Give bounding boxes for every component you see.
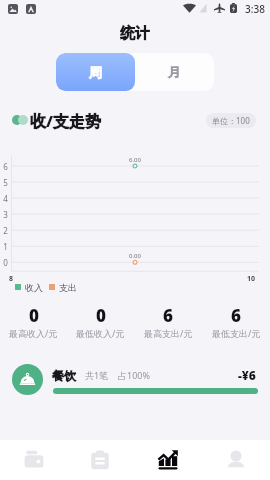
staticText: -¥6 (238, 367, 256, 383)
staticText: 周 (89, 64, 102, 80)
staticText: 4 (3, 193, 8, 204)
staticText: 0 (29, 304, 39, 327)
staticText: 0 (3, 257, 8, 268)
button[interactable]: 周 (56, 53, 135, 91)
staticText: 3 (3, 209, 8, 220)
staticText: 单位：100 (212, 115, 250, 126)
staticText: 0.00 (129, 252, 141, 260)
staticText: 最低支出/元 (212, 327, 261, 339)
staticText: 餐饮 (52, 368, 76, 383)
staticText: 8 (9, 274, 14, 284)
staticText: 收入 (25, 282, 43, 293)
staticText: 10 (247, 274, 256, 284)
staticText: 6 (231, 304, 241, 327)
staticText: 最低收入/元 (76, 327, 125, 339)
staticText: 6 (3, 161, 8, 172)
staticText: 统计 (120, 24, 150, 41)
button[interactable]: Records (78, 440, 122, 480)
button[interactable]: Profile (214, 440, 258, 480)
staticText: 月 (168, 64, 181, 80)
staticText: 0 (96, 304, 106, 327)
staticText: 支出 (59, 282, 77, 293)
button[interactable]: 月 (135, 53, 214, 91)
staticText: 3:38 (245, 2, 265, 16)
staticText: 收/支走势 (30, 110, 102, 130)
button[interactable]: Wallet (12, 440, 56, 480)
staticText: 最高收入/元 (9, 327, 58, 339)
staticText: 6 (163, 304, 173, 327)
staticText: 占100% (118, 369, 150, 381)
button[interactable]: Statistics (146, 440, 190, 480)
staticText: 1 (3, 241, 8, 252)
staticText: 最高支出/元 (144, 327, 193, 339)
button[interactable]: 餐饮 (0, 0, 270, 480)
staticText: 5 (3, 177, 8, 188)
staticText: 2 (3, 225, 8, 236)
staticText: 共1笔 (85, 369, 109, 381)
staticText: 6.00 (129, 156, 141, 164)
